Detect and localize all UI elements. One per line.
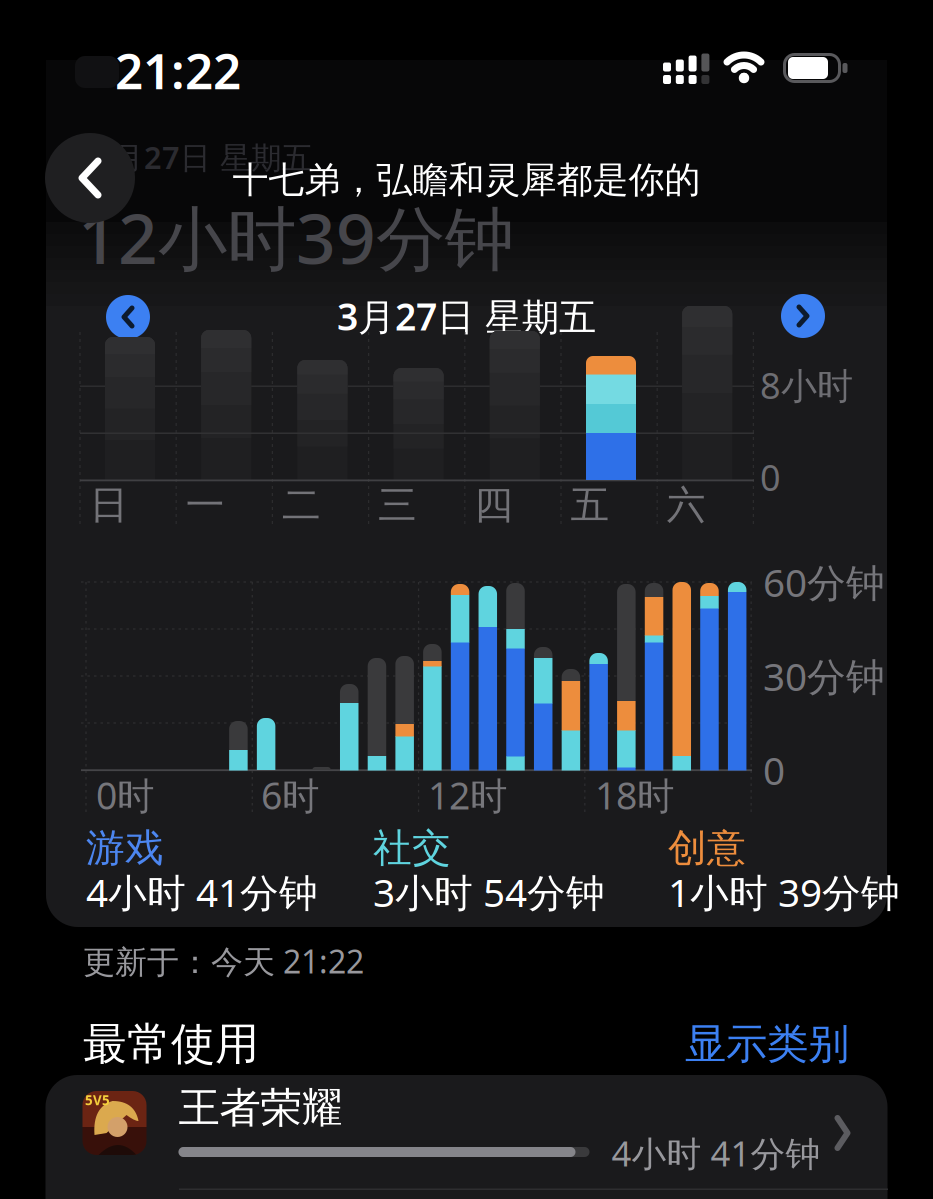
staticText: 更新于：今天 21:22 <box>83 940 364 982</box>
button[interactable]: 前一天 <box>106 295 150 339</box>
staticText: 3月27日 星期五 <box>337 291 596 341</box>
button[interactable]: 显示类别 <box>549 1019 849 1069</box>
staticText: 4小时 41分钟 <box>611 1130 820 1176</box>
staticText: 1小时 39分钟 <box>668 866 900 918</box>
staticText: 8小时 <box>760 361 853 409</box>
staticText: 三 <box>378 481 417 529</box>
staticText: 游戏 <box>86 824 164 872</box>
staticText: 二 <box>282 481 321 529</box>
staticText: 0 <box>760 453 781 501</box>
staticText: 社交 <box>373 824 451 872</box>
staticText: 最常使用 <box>83 1017 259 1071</box>
button[interactable]: 返回 <box>45 133 135 223</box>
staticText: 3月27日 星期五 <box>95 137 313 177</box>
button[interactable]: 5V5 <box>45 1075 887 1199</box>
staticText: 60分钟 <box>763 556 885 608</box>
staticText: 十七弟，弘瞻和灵犀都是你的 <box>232 158 700 202</box>
staticText: 4小时 41分钟 <box>86 866 318 918</box>
staticText: 30分钟 <box>763 650 885 702</box>
staticText: 0 <box>763 744 785 796</box>
staticText: 王者荣耀 <box>178 1083 342 1133</box>
staticText: 日 <box>89 481 128 529</box>
button[interactable]: 后一天 <box>781 294 825 338</box>
staticText: 显示类别 <box>685 1019 849 1069</box>
staticText: 21:22 <box>115 37 241 103</box>
staticText: 四 <box>474 481 513 529</box>
staticText: 一 <box>186 481 225 529</box>
staticText: 5V5 <box>85 1091 110 1109</box>
staticText: 创意 <box>668 824 746 872</box>
staticText: 12时 <box>428 770 507 820</box>
staticText: 3小时 54分钟 <box>373 866 605 918</box>
staticText: 12小时39分钟 <box>78 191 514 283</box>
staticText: 0时 <box>96 770 154 820</box>
staticText: 18时 <box>595 770 674 820</box>
staticText: 五 <box>570 481 609 529</box>
staticText: 6时 <box>261 770 319 820</box>
staticText: 六 <box>667 481 706 529</box>
